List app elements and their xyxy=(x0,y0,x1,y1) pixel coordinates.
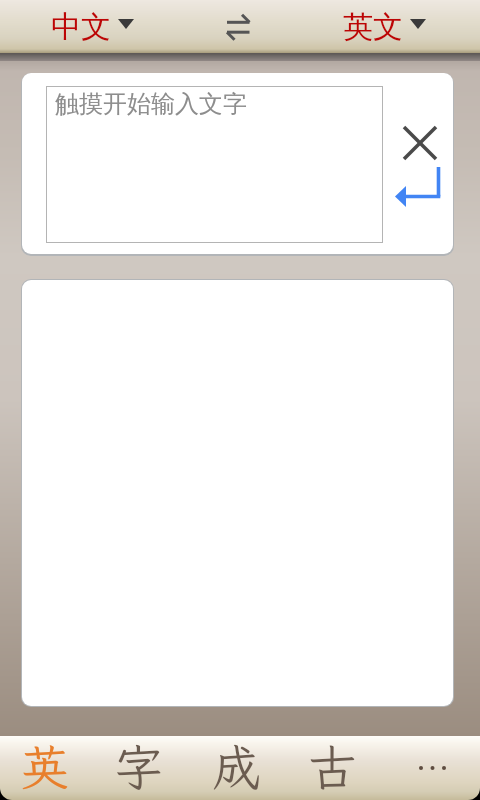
staticText: 成 xyxy=(212,736,262,798)
staticText: 古 xyxy=(308,736,358,798)
button[interactable]: 成 xyxy=(192,736,282,800)
button[interactable]: 字 xyxy=(94,736,184,800)
button[interactable]: 触摸开始输入文字 xyxy=(47,87,382,242)
staticText: 字 xyxy=(114,736,164,798)
button[interactable]: Swap languages xyxy=(214,0,263,53)
staticText: 英文 xyxy=(343,8,403,46)
button[interactable]: 古 xyxy=(288,736,378,800)
staticText: 触摸开始输入文字 xyxy=(55,89,247,119)
button[interactable]: More xyxy=(392,736,472,800)
button[interactable]: 中文 xyxy=(51,0,141,53)
button[interactable]: Enter xyxy=(387,159,448,215)
button[interactable]: Clear text xyxy=(399,122,440,163)
staticText: 中文 xyxy=(51,8,111,46)
button[interactable]: 英 xyxy=(0,736,90,800)
staticText: 英 xyxy=(20,736,70,798)
button[interactable]: 英文 xyxy=(343,0,435,53)
